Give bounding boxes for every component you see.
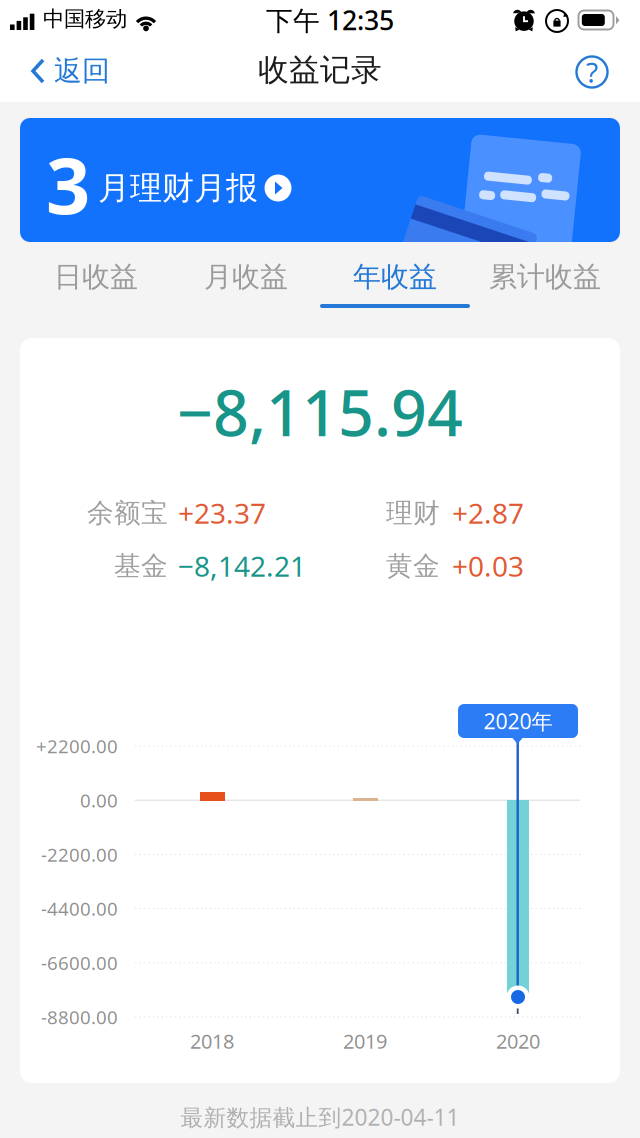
staticText: -4400.00 xyxy=(41,896,118,921)
staticText: 2020年 xyxy=(483,707,552,735)
staticText: ? xyxy=(586,53,598,91)
staticText: 下午 12:35 xyxy=(266,2,394,38)
button[interactable]: 年收益详情 xyxy=(20,338,620,1083)
staticText: +23.37 xyxy=(178,494,266,532)
staticText: 余额宝 xyxy=(87,497,168,529)
staticText: -2200.00 xyxy=(41,842,118,867)
staticText: 0.00 xyxy=(80,788,118,813)
staticText: 累计收益 xyxy=(489,260,601,294)
staticText: +2200.00 xyxy=(36,734,118,758)
button[interactable]: 日收益 xyxy=(21,248,171,320)
staticText: 年收益 xyxy=(353,260,437,294)
button[interactable]: 返回 xyxy=(18,40,148,102)
staticText: −8,142.21 xyxy=(178,547,306,585)
staticText: 黄金 xyxy=(386,550,440,582)
staticText: 月理财月报 xyxy=(98,168,258,208)
staticText: 3 xyxy=(46,133,90,235)
staticText: 理财 xyxy=(386,497,440,529)
staticText: -6600.00 xyxy=(41,950,118,975)
staticText: 返回 xyxy=(54,54,110,88)
staticText: +0.03 xyxy=(452,547,524,585)
staticText: 最新数据截止到2020-04-11 xyxy=(180,1102,459,1132)
button[interactable]: 帮助 xyxy=(568,48,616,96)
staticText: 收益记录 xyxy=(258,51,382,89)
staticText: +2.87 xyxy=(452,494,524,532)
staticText: 2018 xyxy=(190,1028,234,1054)
staticText: 中国移动 xyxy=(43,6,127,32)
button[interactable]: 累计收益 xyxy=(470,248,620,320)
button[interactable]: 年收益 xyxy=(320,248,470,320)
button[interactable]: 3 xyxy=(20,118,620,242)
staticText: 2019 xyxy=(343,1028,387,1054)
staticText: 月收益 xyxy=(204,260,288,294)
staticText: -8800.00 xyxy=(41,1005,118,1029)
button[interactable]: 月收益 xyxy=(171,248,321,320)
staticText: 2020 xyxy=(496,1028,540,1054)
staticText: 基金 xyxy=(114,550,168,582)
staticText: 日收益 xyxy=(54,260,138,294)
staticText: −8,115.94 xyxy=(177,370,463,454)
